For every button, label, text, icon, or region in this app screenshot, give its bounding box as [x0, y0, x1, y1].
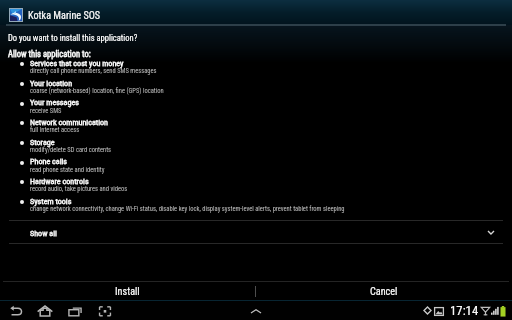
- staticText: Phone calls: [30, 156, 68, 165]
- staticText: read phone state and identity: [30, 166, 105, 174]
- staticText: Network communication: [30, 117, 109, 126]
- staticText: 17:14: [450, 303, 479, 318]
- staticText: Storage: [30, 137, 55, 146]
- staticText: full Internet access: [30, 126, 80, 134]
- staticText: record audio, take pictures and videos: [30, 185, 128, 193]
- staticText: directly call phone numbers, send SMS me…: [30, 67, 157, 75]
- button[interactable]: Recent apps: [67, 303, 83, 319]
- button[interactable]: Cancel: [256, 282, 512, 301]
- button[interactable]: Screenshot: [97, 303, 113, 319]
- button[interactable]: Back: [8, 303, 24, 319]
- staticText: Cancel: [370, 286, 398, 298]
- staticText: Your messages: [30, 97, 79, 106]
- staticText: Install: [115, 286, 140, 298]
- staticText: Allow this application to:: [8, 49, 91, 59]
- staticText: System tools: [30, 196, 72, 205]
- button[interactable]: Home: [37, 303, 53, 319]
- staticText: receive SMS: [30, 107, 62, 115]
- button[interactable]: Show all: [0, 221, 512, 243]
- staticText: modify/delete SD card contents: [30, 146, 112, 154]
- staticText: Show all: [30, 228, 57, 237]
- staticText: Your location: [30, 78, 73, 87]
- button[interactable]: Expand notifications: [249, 305, 263, 319]
- staticText: coarse (network-based) location, fine (G…: [30, 87, 164, 95]
- staticText: change network connectivity, change Wi-F…: [30, 205, 345, 213]
- staticText: Do you want to install this application?: [8, 33, 138, 43]
- button[interactable]: Install: [0, 282, 255, 301]
- staticText: Services that cost you money: [30, 58, 124, 67]
- staticText: Hardware controls: [30, 176, 89, 185]
- staticText: Kotka Marine SOS: [28, 10, 101, 22]
